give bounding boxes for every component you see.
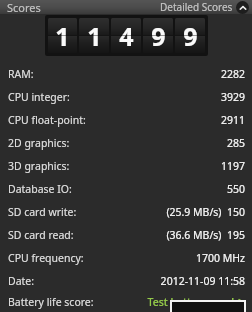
- staticText: 2D graphics:: [8, 136, 70, 150]
- staticText: Scores: [7, 0, 41, 14]
- staticText: SD card read:: [8, 228, 74, 242]
- button[interactable]: CPU integer:: [0, 85, 252, 108]
- staticText: Test battery now!: [147, 295, 234, 309]
- staticText: (25.9 MB/s) 150: [166, 205, 245, 219]
- button[interactable]: SD card read:: [0, 223, 252, 246]
- staticText: 9: [151, 19, 166, 53]
- staticText: RAM:: [8, 67, 34, 81]
- staticText: CPU integer:: [8, 90, 70, 104]
- button[interactable]: 3D graphics:: [0, 154, 252, 177]
- staticText: 3929: [220, 90, 245, 104]
- staticText: CPU frequency:: [8, 251, 84, 265]
- other: Collapse: [236, 1, 249, 14]
- staticText: 2012-11-09 11:58: [160, 274, 245, 288]
- staticText: 3D graphics:: [8, 159, 70, 173]
- button[interactable]: RAM:: [0, 62, 252, 85]
- button[interactable]: Database IO:: [0, 177, 252, 200]
- button[interactable]: CPU float-point:: [0, 108, 252, 131]
- staticText: 285: [226, 136, 245, 150]
- button[interactable]: CPU frequency:: [0, 246, 252, 269]
- button[interactable]: SD card write:: [0, 200, 252, 223]
- button[interactable]: 2D graphics:: [0, 131, 252, 154]
- staticText: Database IO:: [8, 182, 72, 196]
- staticText: 4: [119, 19, 134, 53]
- staticText: Battery life score:: [8, 295, 94, 309]
- button[interactable]: Detailed Scores: [160, 0, 252, 14]
- staticText: 1700 MHz: [196, 251, 245, 265]
- staticText: 1: [87, 19, 102, 53]
- staticText: (36.6 MB/s) 195: [166, 228, 245, 242]
- staticText: Date:: [8, 274, 35, 288]
- staticText: 1197: [220, 159, 245, 173]
- staticText: SD card write:: [8, 205, 77, 219]
- staticText: 2282: [220, 67, 245, 81]
- button[interactable]: Date:: [0, 269, 252, 292]
- button[interactable]: Battery life score:: [0, 292, 252, 312]
- staticText: 9: [183, 19, 198, 53]
- staticText: 1: [55, 19, 70, 53]
- staticText: CPU float-point:: [8, 113, 86, 127]
- staticText: 550: [226, 182, 245, 196]
- staticText: 2911: [220, 113, 245, 127]
- staticText: Detailed Scores: [160, 0, 233, 14]
- button[interactable]: 1: [45, 15, 208, 56]
